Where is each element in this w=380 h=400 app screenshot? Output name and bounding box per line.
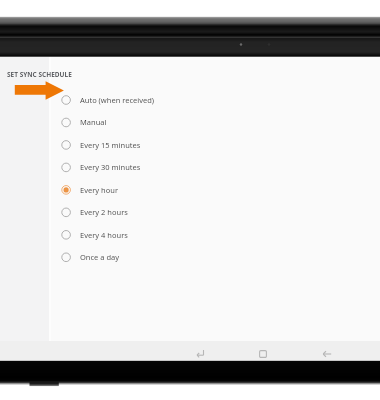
button[interactable]: Back bbox=[190, 344, 210, 364]
button[interactable]: Every 4 hours bbox=[52, 224, 380, 246]
button[interactable]: Previous bbox=[317, 344, 337, 364]
staticText: Every hour bbox=[80, 185, 118, 195]
staticText: Every 30 minutes bbox=[80, 162, 141, 172]
staticText: Every 2 hours bbox=[80, 207, 128, 217]
button[interactable]: Manual bbox=[52, 111, 380, 133]
staticText: Once a day bbox=[80, 252, 120, 262]
staticText: Every 4 hours bbox=[80, 230, 128, 240]
button[interactable]: Every 2 hours bbox=[52, 201, 380, 223]
staticText: Auto (when received) bbox=[80, 95, 155, 105]
button[interactable]: Every 30 minutes bbox=[52, 156, 380, 178]
button[interactable]: Every 15 minutes bbox=[52, 134, 380, 156]
button[interactable]: Every hour bbox=[52, 179, 380, 201]
button[interactable]: Recent apps bbox=[253, 344, 273, 364]
staticText: SET SYNC SCHEDULE bbox=[7, 70, 72, 79]
staticText: Manual bbox=[80, 117, 107, 127]
button[interactable]: Auto (when received) bbox=[52, 89, 380, 111]
button[interactable]: Once a day bbox=[52, 246, 380, 268]
staticText: Every 15 minutes bbox=[80, 140, 141, 150]
